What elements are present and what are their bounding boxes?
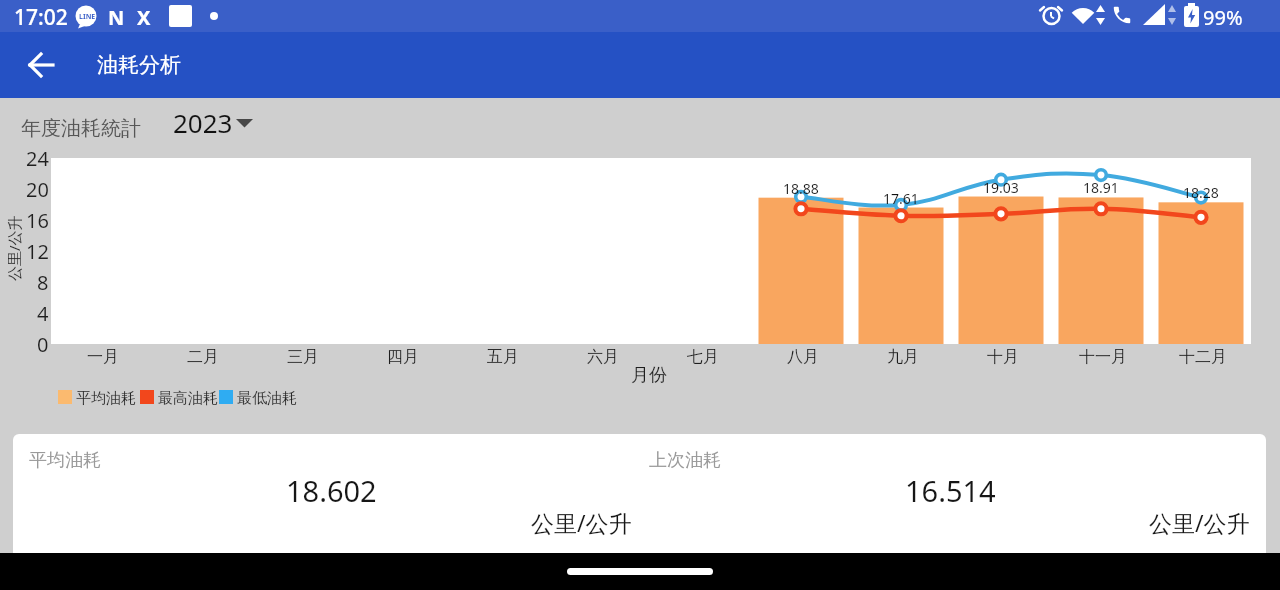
staticText: 四月 bbox=[387, 347, 419, 367]
staticText: 二月 bbox=[187, 347, 219, 367]
staticText: N bbox=[108, 4, 125, 31]
staticText: 18.91 bbox=[1083, 178, 1119, 197]
staticText: 18.602 bbox=[286, 471, 377, 510]
staticText: 一月 bbox=[87, 347, 119, 367]
staticText: 16.514 bbox=[905, 471, 996, 510]
staticText: 年度油耗統計 bbox=[21, 116, 141, 141]
staticText: 平均油耗 bbox=[29, 449, 101, 472]
staticText: 三月 bbox=[287, 347, 319, 367]
staticText: 十月 bbox=[987, 347, 1019, 367]
staticText: 2023 bbox=[173, 105, 233, 140]
staticText: 公里/公升 bbox=[1149, 507, 1250, 538]
button[interactable] bbox=[20, 44, 64, 88]
staticText: 24 bbox=[26, 145, 49, 172]
staticText: 20 bbox=[26, 176, 49, 203]
staticText: 十二月 bbox=[1179, 347, 1227, 367]
staticText: 月份 bbox=[631, 364, 667, 387]
staticText: 最高油耗 bbox=[158, 389, 218, 408]
staticText: 最低油耗 bbox=[237, 389, 297, 408]
staticText: 4 bbox=[37, 300, 49, 327]
staticText: 18.28 bbox=[1183, 183, 1219, 202]
staticText: 六月 bbox=[587, 347, 619, 367]
staticText: X bbox=[137, 4, 151, 31]
staticText: 99% bbox=[1203, 4, 1243, 31]
staticText: 17:02 bbox=[14, 3, 68, 32]
staticText: 19.03 bbox=[983, 178, 1019, 197]
staticText: 八月 bbox=[787, 347, 819, 367]
staticText: LINE bbox=[79, 12, 96, 22]
staticText: 油耗分析 bbox=[97, 52, 181, 78]
staticText: 0 bbox=[37, 331, 49, 358]
staticText: 8 bbox=[37, 269, 49, 296]
staticText: 16 bbox=[26, 207, 49, 234]
button[interactable] bbox=[165, 100, 265, 140]
staticText: 平均油耗 bbox=[76, 389, 136, 408]
staticText: 公里/公升 bbox=[4, 215, 24, 281]
button[interactable] bbox=[567, 568, 713, 575]
staticText: 十一月 bbox=[1079, 347, 1127, 367]
staticText: 公里/公升 bbox=[531, 507, 632, 538]
staticText: 七月 bbox=[687, 347, 719, 367]
staticText: 17.61 bbox=[883, 189, 919, 208]
staticText: 九月 bbox=[887, 347, 919, 367]
staticText: 上次油耗 bbox=[649, 449, 721, 472]
staticText: 18.88 bbox=[783, 179, 819, 198]
staticText: 12 bbox=[26, 238, 49, 265]
staticText: 五月 bbox=[487, 347, 519, 367]
